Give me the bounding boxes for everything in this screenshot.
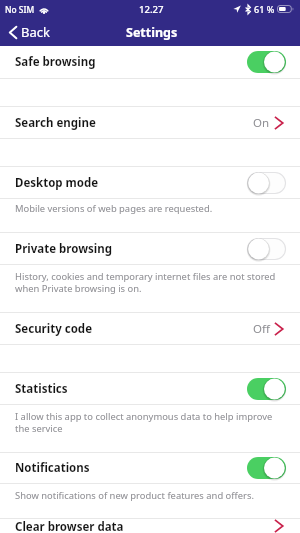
staticText: Clear browser data [15,519,124,533]
button[interactable]: On [247,457,286,479]
button[interactable]: Search engine [0,107,300,138]
button[interactable]: Safe browsing [0,46,300,78]
staticText: Off [253,321,270,337]
staticText: Security code [15,321,92,337]
staticText: History, cookies and temporary internet … [15,270,282,295]
staticText: Statistics [15,381,68,397]
button[interactable]: Private browsing [0,233,300,264]
button[interactable]: Off [247,172,286,194]
staticText: 12.27 [139,3,164,16]
staticText: Desktop mode [15,175,99,191]
staticText: Search engine [15,115,96,131]
staticText: 61 % [254,3,275,15]
button[interactable]: On [247,378,286,400]
button[interactable]: Desktop mode [0,167,300,198]
button[interactable]: Back [0,23,60,41]
button[interactable]: Notifications [0,453,300,483]
staticText: I allow this app to collect anonymous da… [15,410,282,435]
button[interactable]: On [247,51,286,73]
button[interactable]: Off [247,238,286,260]
staticText: Show notifications of new product featur… [15,489,254,502]
button[interactable]: Clear browser data [0,519,300,533]
staticText: Private browsing [15,241,112,257]
staticText: Notifications [15,460,90,476]
staticText: On [253,115,270,131]
button[interactable]: Statistics [0,373,300,404]
staticText: Mobile versions of web pages are request… [15,202,213,215]
staticText: Safe browsing [15,54,96,70]
staticText: Settings [126,24,178,41]
button[interactable]: Security code [0,313,300,344]
staticText: Back [21,23,50,41]
staticText: No SIM [5,4,35,15]
